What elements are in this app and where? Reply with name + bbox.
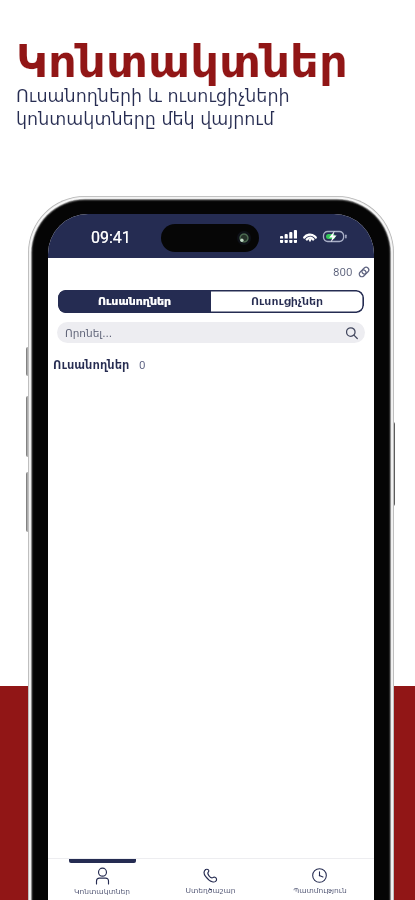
staticText: Ուսանողների և ուսուցիչների կոնտակտները մ…	[16, 86, 290, 129]
other: Copy link	[358, 266, 370, 278]
button[interactable]: Contacts	[48, 859, 156, 900]
staticText: Ուսանողներ	[53, 358, 130, 371]
staticText: Կոնտակտներ	[74, 887, 130, 896]
button[interactable]: History	[265, 859, 374, 900]
other: Dialer	[203, 868, 218, 883]
staticText: 0	[139, 358, 146, 371]
staticText: Որոնել...	[65, 327, 113, 339]
staticText: Ուսանողներ	[98, 295, 172, 308]
staticText: 800	[333, 265, 353, 278]
button[interactable]: Dialer	[156, 859, 265, 900]
other: Contacts	[95, 868, 110, 884]
staticText: Կոնտակտներ	[16, 35, 348, 87]
button[interactable]: Որոնել...	[57, 322, 365, 343]
staticText: Ուսուցիչներ	[251, 295, 324, 308]
other: Search	[346, 327, 358, 339]
button[interactable]: Ուսանողներ	[58, 290, 211, 313]
staticText: 09:41	[91, 228, 131, 247]
other: History	[312, 868, 327, 883]
staticText: Ստեղծաշար	[185, 886, 236, 895]
button[interactable]: Ուսուցիչներ	[211, 290, 364, 313]
staticText: Պատմություն	[293, 886, 347, 895]
